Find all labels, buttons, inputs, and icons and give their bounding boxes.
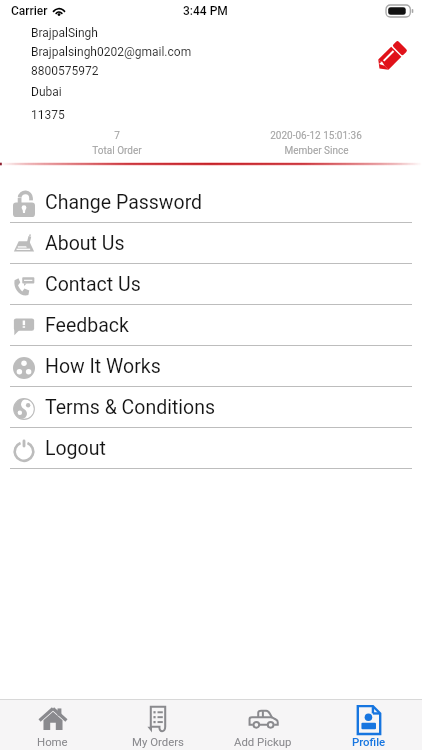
staticText: Home [37,735,68,748]
staticText: Brajpalsingh0202@gmail.com [31,45,192,59]
staticText: Member Since [284,145,349,157]
button[interactable]: About Us [0,223,422,264]
staticText: 2020-06-12 15:01:36 [270,130,362,142]
button[interactable]: Terms & Conditions [0,387,422,428]
button[interactable]: My Orders [105,700,210,750]
button[interactable]: Edit profile [367,33,415,81]
staticText: Carrier [11,4,48,18]
staticText: Total Order [92,145,142,157]
staticText: Feedback [45,314,129,337]
button[interactable]: Change Password [0,182,422,223]
staticText: 11375 [31,108,65,122]
staticText: 7 [114,130,120,142]
staticText: 8800575972 [31,64,99,78]
staticText: Dubai [31,85,62,99]
button[interactable]: Feedback [0,305,422,346]
button[interactable]: Contact Us [0,264,422,305]
staticText: Terms & Conditions [45,396,216,419]
staticText: Contact Us [45,273,141,296]
button[interactable]: Add Pickup [210,700,316,750]
button[interactable]: How It Works [0,346,422,387]
staticText: Logout [45,437,106,460]
button[interactable]: Profile [316,700,422,750]
staticText: 3:44 PM [183,4,228,18]
staticText: Profile [352,735,386,748]
staticText: How It Works [45,355,161,378]
staticText: BrajpalSingh [31,26,98,40]
staticText: About Us [45,232,125,255]
button[interactable]: Home [0,700,105,750]
staticText: Change Password [45,191,203,214]
staticText: Add Pickup [234,735,292,748]
button[interactable]: Logout [0,428,422,469]
staticText: My Orders [132,735,184,748]
